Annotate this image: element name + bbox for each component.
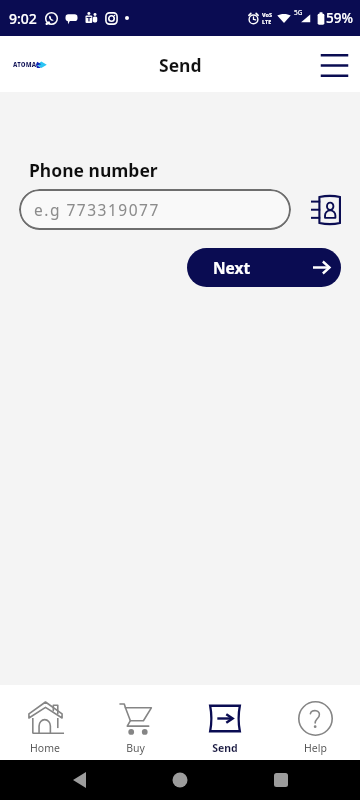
staticText: LTE: [262, 18, 272, 25]
button[interactable]: Buy: [90, 685, 180, 760]
staticText: Home: [30, 741, 60, 755]
staticText: 9:02: [9, 9, 37, 28]
staticText: Buy: [126, 741, 145, 755]
staticText: 5G: [294, 8, 303, 17]
staticText: Phone number: [29, 158, 158, 182]
staticText: ATOMA: [13, 61, 37, 69]
button[interactable]: Send: [180, 685, 270, 760]
button[interactable]: e.g 773319077: [19, 189, 291, 230]
staticText: e.g 773319077: [34, 199, 160, 220]
staticText: 59%: [326, 9, 353, 27]
button[interactable]: Choose from contacts: [310, 194, 342, 226]
staticText: Next: [213, 257, 251, 278]
button[interactable]: Help: [270, 685, 360, 760]
button[interactable]: Menu: [318, 48, 350, 80]
staticText: Send: [159, 53, 202, 77]
staticText: Help: [304, 741, 327, 755]
staticText: VoS: [262, 11, 272, 18]
staticText: Send: [212, 741, 238, 755]
button[interactable]: Home: [0, 685, 90, 760]
button[interactable]: Next: [187, 248, 341, 287]
